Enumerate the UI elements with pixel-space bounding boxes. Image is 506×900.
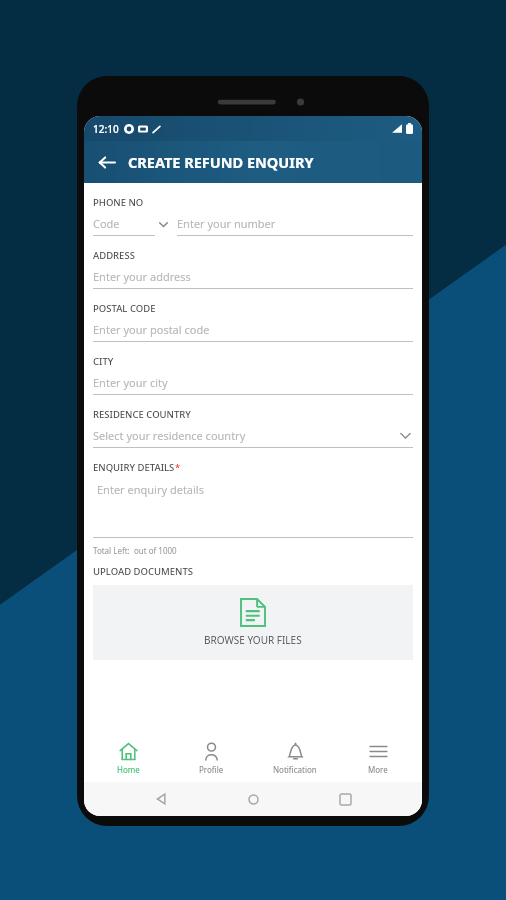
button[interactable]: Home [89,739,167,778]
button[interactable]: Select your residence country [93,428,413,448]
button[interactable]: Notification [256,739,334,778]
button[interactable]: Enter your city [93,375,413,395]
button[interactable]: Enter enquiry details [93,482,413,538]
button[interactable]: More [339,739,417,778]
button[interactable]: Code [93,216,155,236]
button[interactable]: Enter your number [177,216,413,236]
staticText: Enter your address [93,269,191,284]
staticText: Notification [273,764,317,775]
staticText: Enter your postal code [93,322,210,337]
button[interactable]: Back [146,784,176,814]
staticText: Enter your city [93,375,168,390]
staticText: ADDRESS [93,249,135,262]
button[interactable]: Select country code [155,220,171,236]
staticText: ENQUIRY DETAILS [93,461,175,474]
staticText: Enter enquiry details [97,482,204,497]
staticText: CREATE REFUND ENQUIRY [128,152,314,172]
staticText: BROWSE YOUR FILES [204,633,302,647]
staticText: RESIDENCE COUNTRY [93,408,191,421]
button[interactable]: Profile [172,739,250,778]
button[interactable]: Enter your postal code [93,322,413,342]
staticText: * [175,461,181,474]
staticText: Home [117,764,140,775]
staticText: Profile [199,764,224,775]
staticText: CITY [93,355,114,368]
button[interactable]: Back [90,146,122,178]
staticText: Select your residence country [93,428,246,443]
staticText: 12:10 [93,122,119,136]
staticText: POSTAL CODE [93,302,156,315]
staticText: Total Left: out of 1000 [93,545,177,556]
staticText: PHONE NO [93,196,144,209]
button[interactable]: Enter your address [93,269,413,289]
staticText: More [368,764,388,775]
staticText: UPLOAD DOCUMENTS [93,565,193,578]
staticText: Code [93,216,120,231]
staticText: Enter your number [177,216,276,231]
button[interactable]: BROWSE YOUR FILES [93,585,413,660]
button[interactable]: Recent apps [330,784,360,814]
button[interactable]: Home [238,784,268,814]
